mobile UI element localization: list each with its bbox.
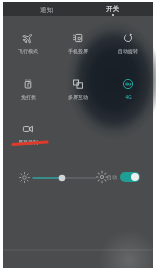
- staticText: 免打扰: [21, 94, 36, 100]
- button[interactable]: 多屏互动: [53, 67, 103, 112]
- staticText: 通知: [40, 6, 53, 14]
- staticText: 开关: [106, 5, 119, 13]
- button[interactable]: Auto brightness: [120, 172, 140, 182]
- button[interactable]: Brightness: [30, 171, 97, 185]
- staticText: 飞行模式: [18, 48, 38, 54]
- staticText: 多屏互动: [68, 94, 88, 100]
- button[interactable]: 4G: [103, 67, 153, 112]
- staticText: 自动旋转: [118, 48, 138, 54]
- button[interactable]: 开关: [88, 2, 137, 18]
- button[interactable]: 通知: [22, 2, 71, 18]
- button[interactable]: 屏幕录制: [3, 112, 53, 157]
- staticText: 4G: [125, 94, 132, 101]
- button[interactable]: 手机投屏: [53, 21, 103, 66]
- staticText: 自动: [107, 174, 117, 180]
- button[interactable]: 免打扰: [3, 67, 53, 112]
- button[interactable]: 飞行模式: [3, 21, 53, 66]
- button[interactable]: 自动旋转: [103, 21, 153, 66]
- staticText: 手机投屏: [68, 48, 88, 54]
- staticText: 屏幕录制: [18, 139, 38, 145]
